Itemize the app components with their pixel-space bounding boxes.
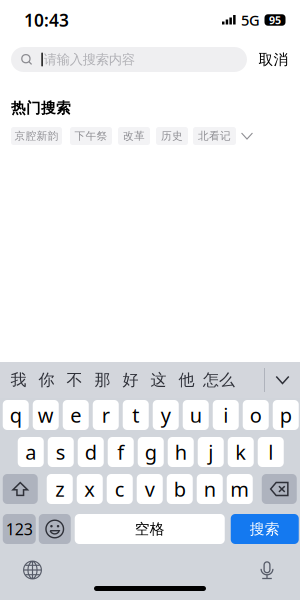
staticText: 你 [38,370,54,390]
button[interactable]: 切换大写 [3,474,38,504]
staticText: b [174,476,186,502]
button[interactable]: p [273,400,299,430]
staticText: 我 [10,370,26,390]
button[interactable]: m [227,474,253,504]
staticText: 下午祭 [74,129,107,143]
staticText: 改革 [123,129,145,143]
button[interactable]: c [107,474,133,504]
staticText: i [223,402,228,428]
button[interactable]: 搜索 [231,514,299,544]
button[interactable]: s [48,437,74,467]
staticText: e [70,402,81,428]
button[interactable]: o [243,400,269,430]
staticText: f [117,439,124,465]
button[interactable]: 展开更多 [236,127,258,145]
button[interactable]: 他 [172,362,200,398]
staticText: w [38,402,54,428]
button[interactable]: 好 [116,362,144,398]
staticText: q [10,402,22,428]
staticText: u [190,402,202,428]
staticText: 热门搜索 [11,99,71,117]
staticText: 5G [241,10,260,30]
button[interactable]: 123 [3,514,36,544]
staticText: c [115,476,125,502]
button[interactable]: 不 [60,362,88,398]
staticText: 好 [122,370,138,390]
button[interactable]: u [183,400,209,430]
staticText: y [161,402,171,428]
button[interactable]: t [123,400,149,430]
staticText: 取消 [258,50,288,68]
button[interactable]: j [198,437,224,467]
button[interactable]: d [78,437,104,467]
staticText: p [280,402,292,428]
staticText: l [268,439,273,465]
staticText: 95 [269,13,281,27]
button[interactable]: 那 [88,362,116,398]
staticText: n [204,476,216,502]
staticText: 123 [6,518,33,540]
button[interactable]: 这 [144,362,172,398]
button[interactable]: i [213,400,239,430]
staticText: 历史 [161,129,183,143]
staticText: 这 [150,370,166,390]
button[interactable]: 历史 [156,127,188,145]
button[interactable]: 我 [4,362,32,398]
staticText: z [55,476,64,502]
button[interactable]: 下午祭 [70,127,112,145]
button[interactable]: 语音输入 [247,555,287,585]
button[interactable]: f [108,437,134,467]
button[interactable]: 收起候选 [265,362,300,398]
button[interactable]: 取消 [255,47,292,72]
button[interactable]: a [18,437,44,467]
button[interactable]: z [47,474,73,504]
button[interactable]: b [167,474,193,504]
button[interactable]: g [138,437,164,467]
staticText: 空格 [135,520,165,538]
button[interactable]: y [153,400,179,430]
staticText: t [132,402,139,428]
staticText: 他 [178,370,194,390]
button[interactable]: w [33,400,59,430]
staticText: j [208,439,213,465]
staticText: 怎么 [203,370,235,390]
staticText: 那 [94,370,110,390]
button[interactable]: k [228,437,254,467]
staticText: k [235,439,246,465]
button[interactable]: 空格 [75,514,225,544]
staticText: 请输入搜索内容 [44,51,135,68]
button[interactable]: 删除 [262,474,297,504]
button[interactable]: 京腔新韵 [11,127,62,145]
button[interactable]: 改革 [118,127,150,145]
button[interactable]: l [258,437,284,467]
staticText: d [85,439,97,465]
button[interactable]: h [168,437,194,467]
staticText: r [102,402,110,428]
button[interactable]: x [77,474,103,504]
staticText: h [175,439,187,465]
button[interactable]: 怎么 [200,362,237,398]
button[interactable]: r [93,400,119,430]
staticText: 京腔新韵 [14,129,58,143]
staticText: g [145,439,157,465]
button[interactable]: v [137,474,163,504]
staticText: 不 [66,370,82,390]
button[interactable]: 你 [32,362,60,398]
button[interactable]: n [197,474,223,504]
button[interactable]: 切换输入法 [0,555,42,585]
staticText: m [230,476,249,502]
staticText: v [145,476,155,502]
button[interactable]: e [63,400,89,430]
staticText: o [250,402,262,428]
button[interactable]: q [3,400,29,430]
staticText: 搜索 [250,520,280,538]
button[interactable]: 北看记 [193,127,236,145]
staticText: s [56,439,66,465]
staticText: 10:43 [24,8,69,31]
staticText: a [25,439,36,465]
staticText: 北看记 [198,129,231,143]
button[interactable]: 表情键盘 [39,514,71,544]
staticText: x [84,476,95,502]
